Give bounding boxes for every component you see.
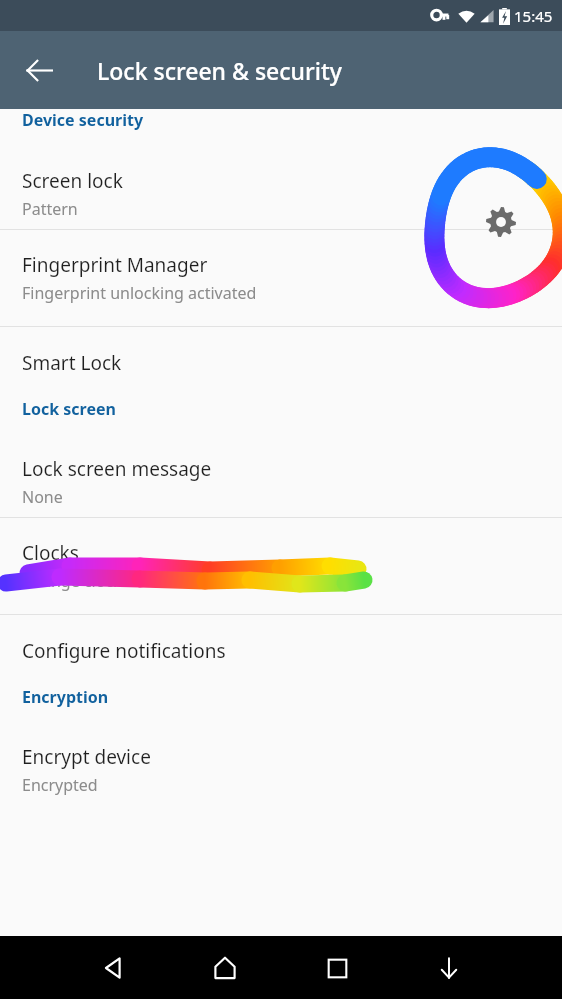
staticText: Encrypt device xyxy=(22,744,151,770)
staticText: Lock screen & security xyxy=(97,55,342,86)
staticText: Clocks xyxy=(22,540,79,566)
staticText: Smart Lock xyxy=(22,350,122,376)
button[interactable]: Configure notifications xyxy=(0,615,562,686)
staticText: Screen lock xyxy=(22,168,123,194)
button[interactable]: Back xyxy=(13,44,65,96)
button[interactable]: Fingerprint Manager xyxy=(0,230,562,326)
button[interactable]: Screen lock xyxy=(0,158,562,229)
button[interactable]: Encrypt device xyxy=(0,734,562,805)
staticText: Fingerprint unlocking activated xyxy=(22,282,257,304)
staticText: 15:45 xyxy=(514,6,553,26)
staticText: Change clock in lockscreen xyxy=(22,570,224,592)
staticText: Lock screen message xyxy=(22,456,212,482)
button[interactable]: Hide keyboard xyxy=(421,940,477,996)
button[interactable]: Back xyxy=(85,940,141,996)
staticText: Device security xyxy=(22,109,144,131)
staticText: Pattern xyxy=(22,198,78,220)
staticText: Fingerprint Manager xyxy=(22,252,208,278)
button[interactable]: Clocks xyxy=(0,518,562,614)
staticText: Configure notifications xyxy=(22,638,226,664)
staticText: None xyxy=(22,486,63,508)
button[interactable]: Lock screen message xyxy=(0,446,562,517)
staticText: Lock screen xyxy=(22,398,116,420)
staticText: Encryption xyxy=(22,686,109,708)
staticText: Encrypted xyxy=(22,774,98,796)
button[interactable]: Recent apps xyxy=(309,940,365,996)
button[interactable]: Home xyxy=(197,940,253,996)
button[interactable]: Smart Lock xyxy=(0,327,562,398)
